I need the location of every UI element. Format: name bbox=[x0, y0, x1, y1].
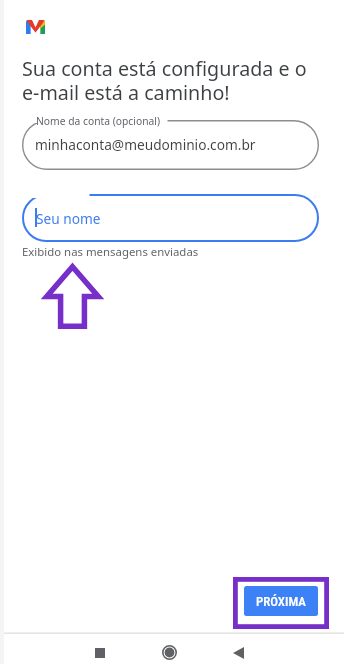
staticText: minhaconta@meudominio.com.br bbox=[35, 135, 256, 154]
staticText: Nome da conta (opcional) bbox=[36, 114, 161, 128]
button[interactable] bbox=[22, 120, 319, 170]
button[interactable]: Home bbox=[162, 645, 177, 660]
staticText: PRÓXIMA bbox=[256, 594, 306, 609]
staticText: Sua conta está configurada e o e-mail es… bbox=[22, 55, 307, 106]
staticText: Seu nome bbox=[36, 209, 101, 228]
staticText: Exibido nas mensagens enviadas bbox=[22, 244, 199, 260]
button[interactable]: PRÓXIMA bbox=[244, 586, 318, 616]
button[interactable]: Back bbox=[233, 647, 244, 659]
button[interactable] bbox=[22, 194, 319, 242]
